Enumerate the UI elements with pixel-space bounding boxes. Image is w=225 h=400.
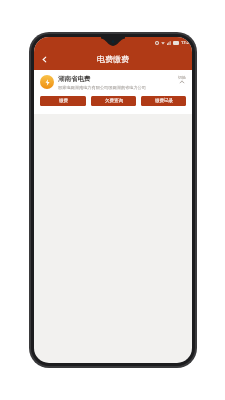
staticText: 缴费: [59, 98, 68, 104]
button[interactable]: Switch provider: [178, 75, 186, 84]
button[interactable]: 缴费: [40, 96, 86, 106]
button[interactable]: Back: [34, 48, 54, 70]
staticText: 缴费记录: [155, 98, 173, 104]
staticText: 欠费查询: [105, 98, 123, 104]
staticText: 国家电网湖南电力有限公司国网湖南省电力公司: [58, 85, 146, 90]
staticText: 切换: [178, 75, 186, 80]
staticText: 电费缴费: [97, 54, 129, 64]
button[interactable]: 欠费查询: [91, 96, 136, 106]
button[interactable]: 缴费记录: [141, 96, 186, 106]
staticText: 17:2: [181, 40, 189, 45]
staticText: 湖南省电费: [58, 75, 91, 83]
button[interactable]: 湖南省电费: [40, 75, 186, 90]
